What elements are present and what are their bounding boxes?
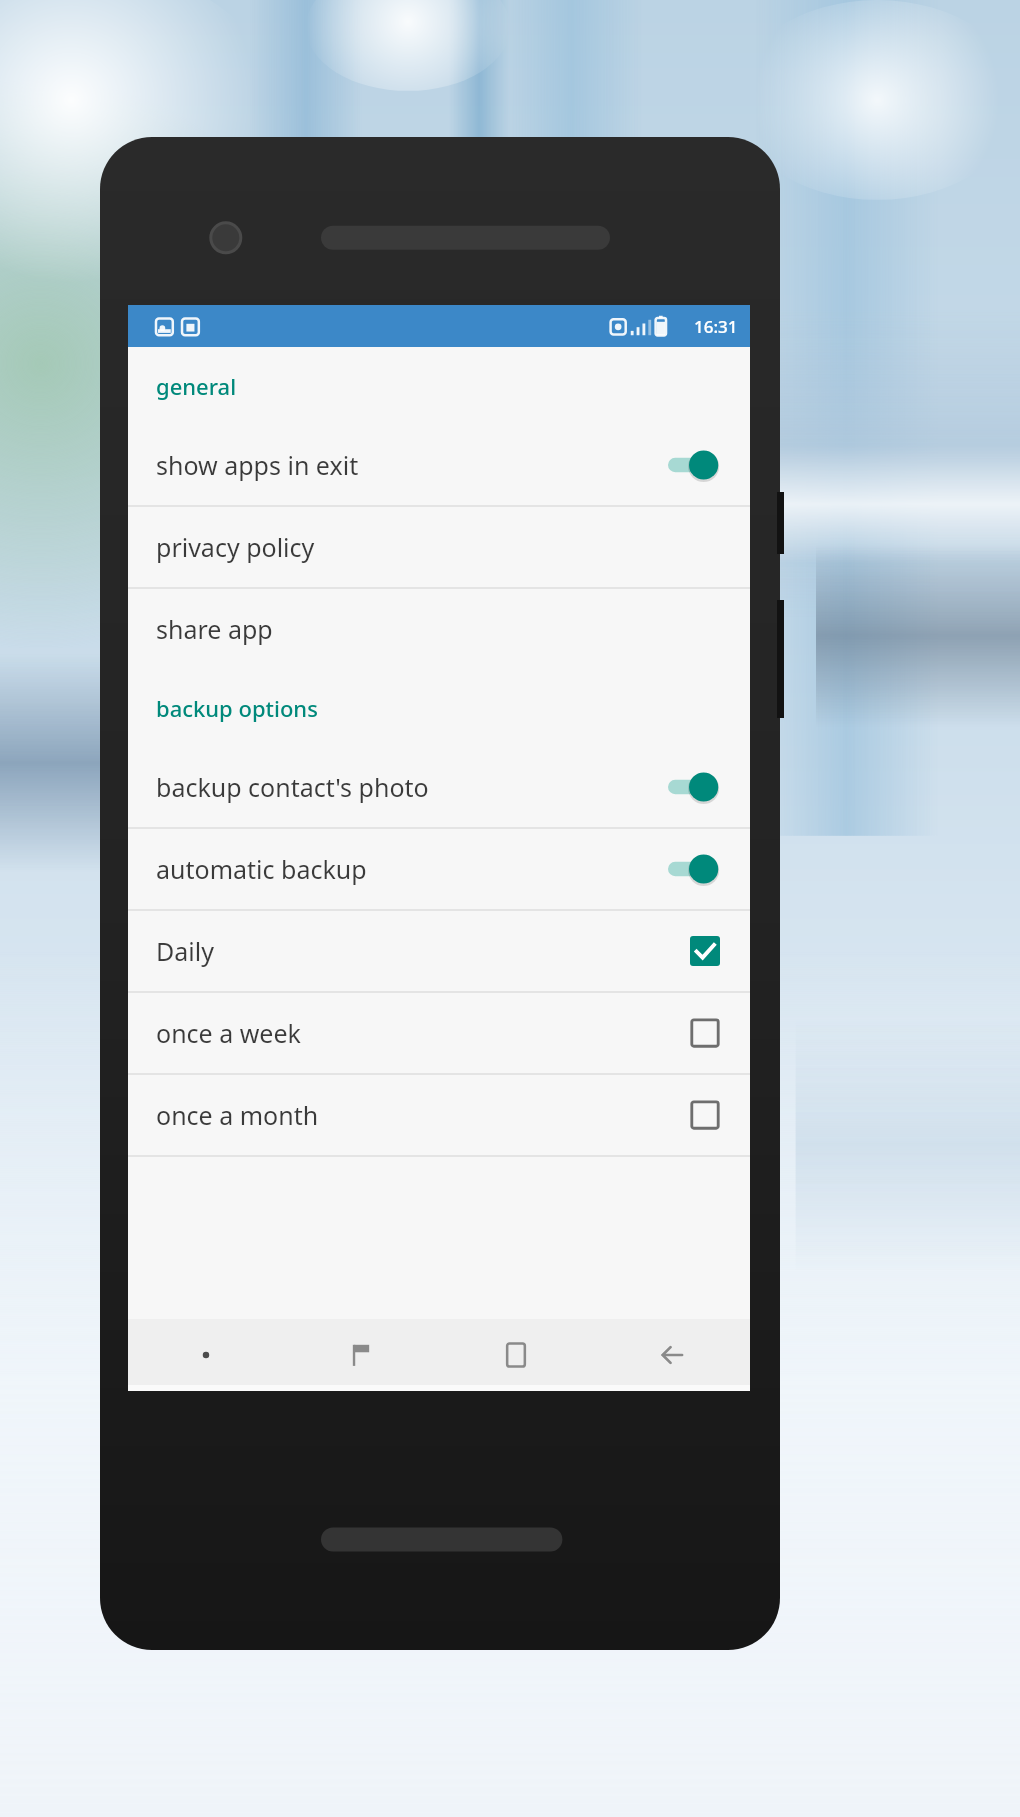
- button[interactable]: automatic backup: [128, 829, 750, 909]
- button[interactable]: privacy policy: [128, 507, 750, 587]
- staticText: once a week: [156, 1016, 690, 1050]
- staticText: backup contact's photo: [156, 770, 668, 804]
- staticText: automatic backup: [156, 852, 668, 886]
- button[interactable]: once a week: [128, 993, 750, 1073]
- button[interactable]: backup contact's photo: [128, 747, 750, 827]
- staticText: privacy policy: [156, 530, 315, 564]
- staticText: show apps in exit: [156, 448, 668, 482]
- staticText: share app: [156, 612, 273, 646]
- button[interactable]: Home: [283, 1319, 438, 1391]
- staticText: backup options: [156, 693, 318, 723]
- button[interactable]: Assistant: [128, 1319, 283, 1391]
- staticText: general: [156, 371, 237, 401]
- button[interactable]: Recents: [438, 1319, 594, 1391]
- button[interactable]: once a month: [128, 1075, 750, 1155]
- staticText: 16:31: [694, 315, 738, 338]
- button[interactable]: Back: [594, 1319, 750, 1391]
- button[interactable]: show apps in exit: [128, 425, 750, 505]
- staticText: Daily: [156, 934, 690, 968]
- staticText: once a month: [156, 1098, 690, 1132]
- button[interactable]: Daily: [128, 911, 750, 991]
- button[interactable]: share app: [128, 589, 750, 669]
